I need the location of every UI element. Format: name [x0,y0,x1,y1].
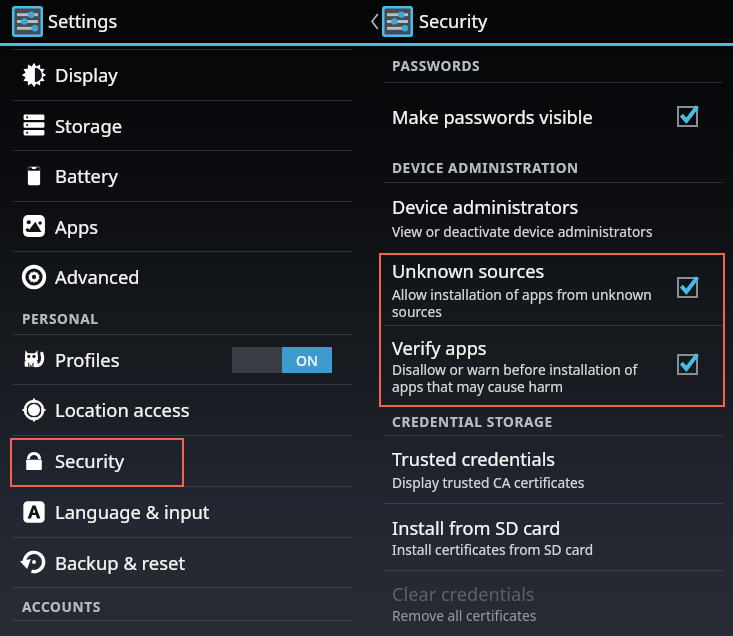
staticText: View or deactivate device administrators [392,222,653,241]
staticText: Remove all certificates [392,606,537,625]
staticText: Advanced [55,264,140,289]
button[interactable]: Checkbox, checked [678,354,700,376]
staticText: Device administrators [392,195,579,220]
staticText: Allow installation of apps from unknown [392,285,652,304]
button[interactable] [0,385,352,435]
button[interactable]: Settings [0,0,358,43]
staticText: Verify apps [392,336,487,361]
staticText: apps that may cause harm [392,377,564,396]
staticText: CREDENTIAL STORAGE [392,412,553,431]
staticText: Unknown sources [392,259,545,284]
button[interactable] [379,190,725,250]
staticText: Install from SD card [392,516,561,541]
button[interactable] [379,89,725,136]
staticText: Disallow or warn before installation of [392,360,638,379]
staticText: PASSWORDS [392,56,481,75]
staticText: Make passwords visible [392,105,593,130]
button[interactable]: Profiles switch, on [232,347,332,373]
staticText: Display [55,62,118,87]
staticText: Clear credentials [392,582,535,607]
other: Back [370,12,380,31]
staticText: DEVICE ADMINISTRATION [392,158,579,177]
button[interactable] [379,442,725,502]
button[interactable] [0,538,352,587]
button[interactable] [379,577,725,636]
staticText: PERSONAL [22,309,99,328]
staticText: Apps [55,214,99,239]
button[interactable] [0,335,352,384]
staticText: ACCOUNTS [22,597,101,616]
staticText: Language & input [55,499,210,524]
staticText: sources [392,302,442,321]
button[interactable] [0,202,352,251]
staticText: Profiles [55,347,120,372]
button[interactable]: Checkbox, checked [678,277,700,299]
staticText: Battery [55,163,118,188]
button[interactable] [0,252,352,302]
button[interactable] [0,101,352,150]
staticText: ON [296,351,318,370]
staticText: Install certificates from SD card [392,540,594,559]
button[interactable] [379,255,725,323]
staticText: Display trusted CA certificates [392,473,585,492]
button[interactable] [0,50,352,100]
staticText: Backup & reset [55,550,186,575]
button[interactable]: Checkbox, checked [678,106,700,128]
staticText: Security [419,9,488,34]
staticText: Location access [55,397,190,422]
button[interactable] [379,510,725,569]
button[interactable] [0,151,352,201]
staticText: Trusted credentials [392,447,556,472]
staticText: Storage [55,113,123,138]
button[interactable]: Back [358,0,733,43]
button[interactable] [379,328,725,403]
button[interactable] [0,436,352,486]
button[interactable] [0,487,352,537]
staticText: Settings [48,9,118,34]
staticText: Security [55,448,125,473]
